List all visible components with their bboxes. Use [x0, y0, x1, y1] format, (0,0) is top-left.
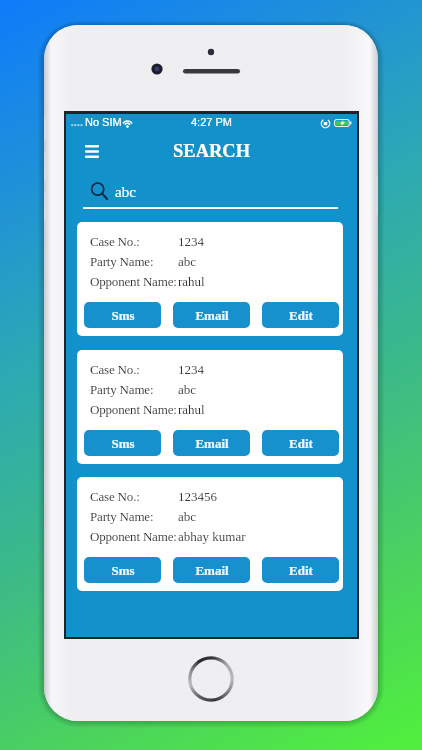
- staticText: SEARCH: [173, 141, 251, 161]
- button[interactable]: Email: [173, 302, 250, 328]
- staticText: rahul: [178, 402, 205, 416]
- staticText: abc: [178, 254, 197, 268]
- staticText: Edit: [289, 436, 313, 450]
- staticText: Email: [195, 308, 229, 322]
- button[interactable]: abc: [66, 114, 357, 637]
- staticText: Party Name:: [90, 509, 154, 523]
- staticText: 123456: [178, 489, 217, 503]
- button[interactable]: Case No.:: [77, 222, 343, 336]
- button[interactable]: Open navigation menu: [77, 136, 107, 166]
- staticText: Case No.:: [90, 234, 140, 248]
- staticText: abc: [115, 184, 136, 201]
- button[interactable]: Case No.:: [77, 477, 343, 591]
- button[interactable]: Sms: [84, 302, 161, 328]
- button[interactable]: Sms: [84, 557, 161, 583]
- button[interactable]: Edit: [262, 557, 339, 583]
- staticText: Party Name:: [90, 254, 154, 268]
- staticText: rahul: [178, 274, 205, 288]
- button[interactable]: Edit: [262, 430, 339, 456]
- staticText: Edit: [289, 308, 313, 322]
- staticText: 1234: [178, 362, 204, 376]
- staticText: Email: [195, 563, 229, 577]
- staticText: 4:27 PM: [191, 116, 232, 128]
- staticText: Opponent Name:: [90, 274, 177, 288]
- staticText: Case No.:: [90, 489, 140, 503]
- staticText: Sms: [111, 436, 135, 450]
- staticText: Email: [195, 436, 229, 450]
- staticText: abc: [178, 509, 197, 523]
- staticText: abhay kumar: [178, 529, 246, 543]
- button[interactable]: Case No.:: [77, 350, 343, 464]
- staticText: Edit: [289, 563, 313, 577]
- staticText: Sms: [111, 563, 135, 577]
- staticText: Sms: [111, 308, 135, 322]
- button[interactable]: Email: [173, 430, 250, 456]
- staticText: 1234: [178, 234, 204, 248]
- staticText: Party Name:: [90, 382, 154, 396]
- staticText: Opponent Name:: [90, 402, 177, 416]
- button[interactable]: Edit: [262, 302, 339, 328]
- staticText: abc: [178, 382, 197, 396]
- staticText: No SIM: [85, 116, 122, 128]
- button[interactable]: Sms: [84, 430, 161, 456]
- staticText: Opponent Name:: [90, 529, 177, 543]
- staticText: Case No.:: [90, 362, 140, 376]
- button[interactable]: Email: [173, 557, 250, 583]
